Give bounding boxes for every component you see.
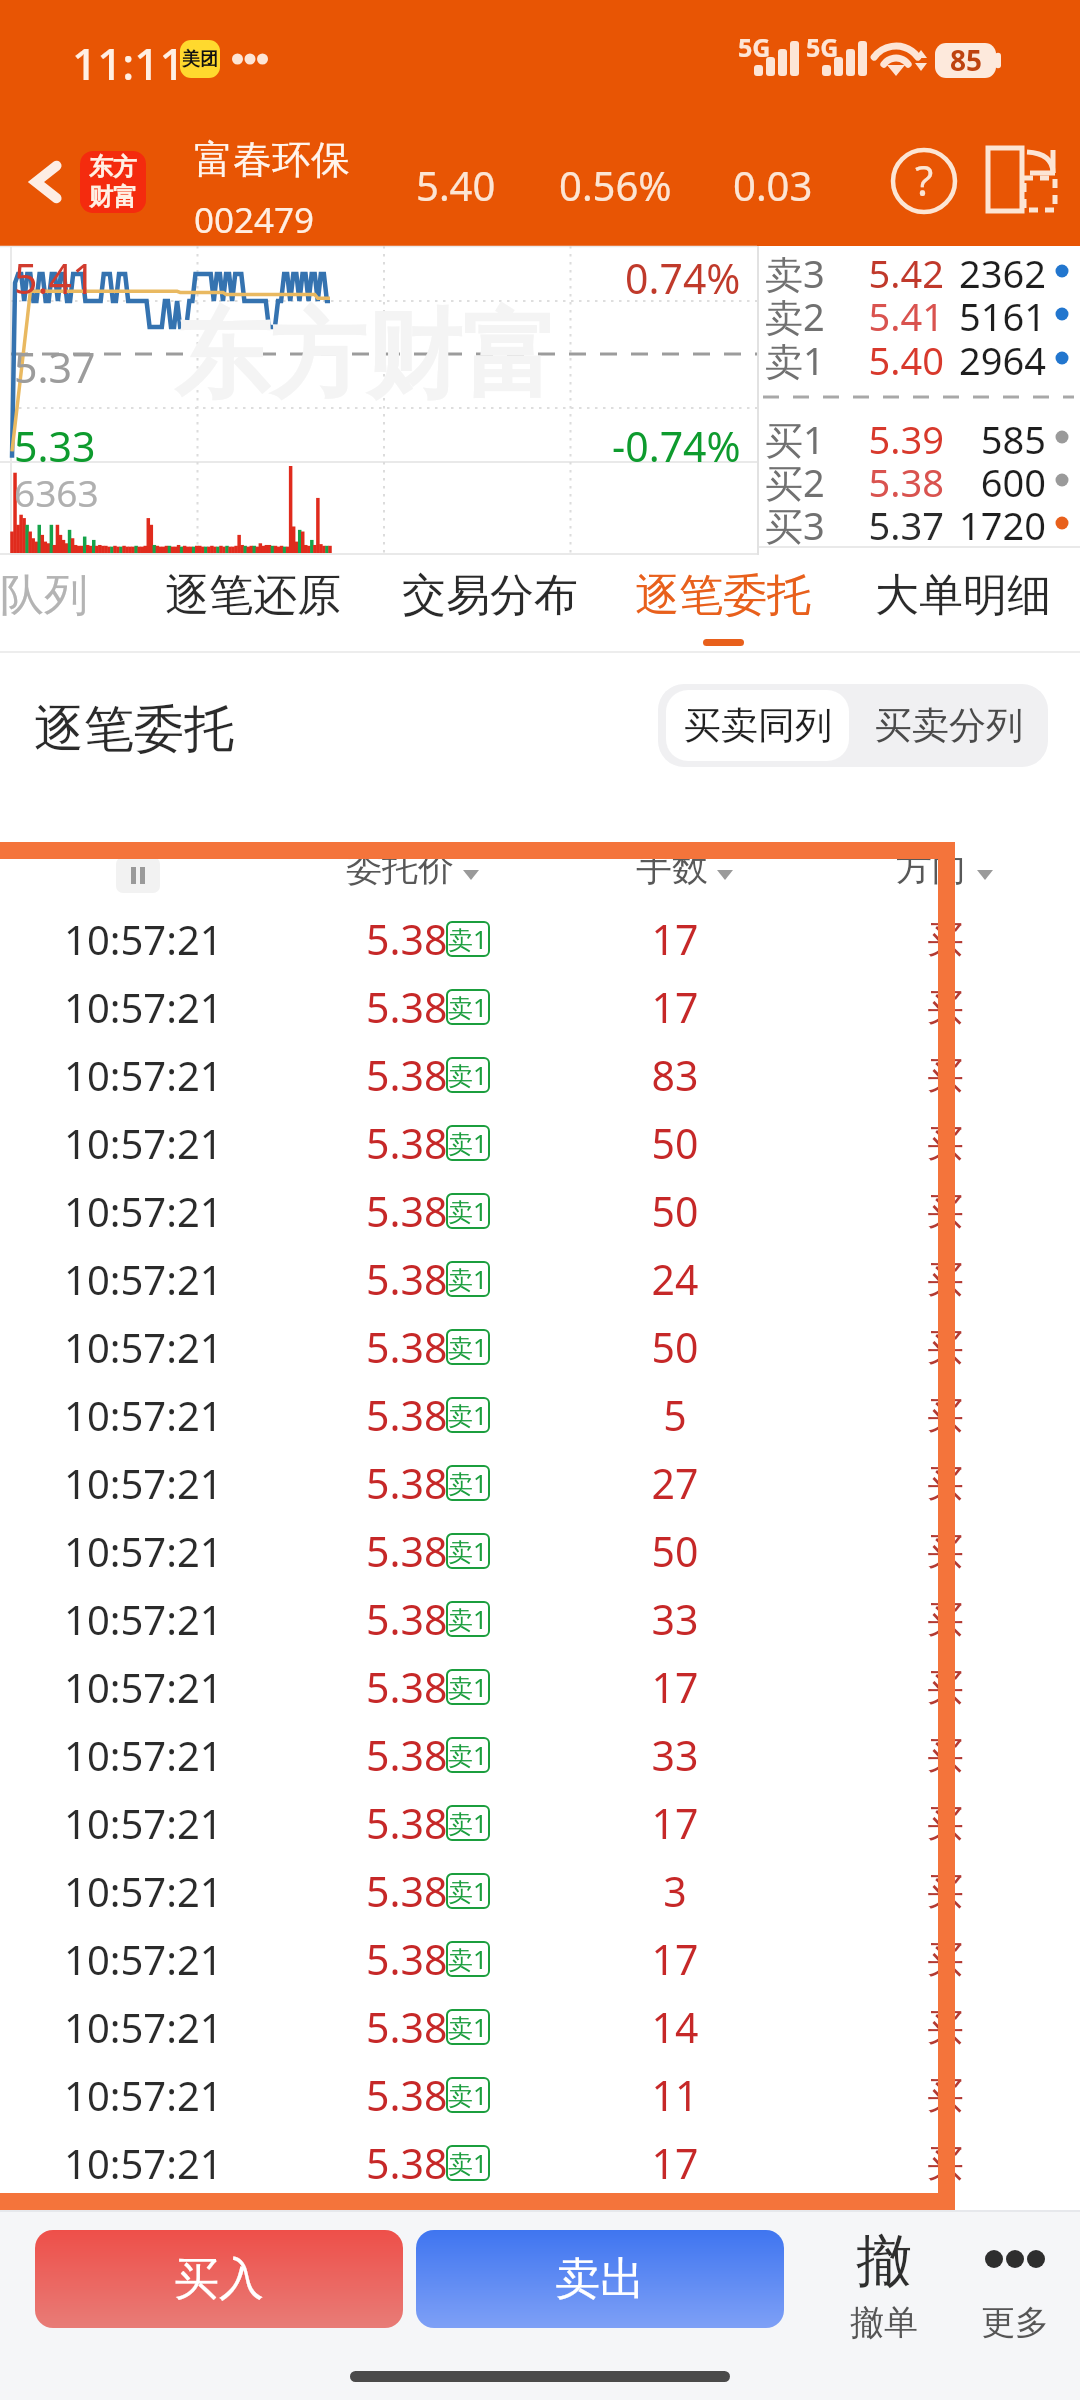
staticText: 卖2 <box>765 290 825 338</box>
staticText: 10:57:21 <box>64 1388 223 1442</box>
staticText: 50 <box>615 1319 735 1375</box>
button[interactable]: 10:57:21 <box>0 1925 1080 1993</box>
button[interactable]: 委托价 <box>346 845 479 890</box>
staticText: 撤 <box>856 2226 912 2297</box>
staticText: 卖1 <box>448 1330 488 1364</box>
button[interactable]: More <box>945 2218 1080 2348</box>
staticText: 逐笔还原 <box>165 568 341 623</box>
button[interactable]: 10:57:21 <box>0 1109 1080 1177</box>
staticText: 买 <box>927 1800 964 1847</box>
staticText: 财富 <box>89 182 137 212</box>
staticText: 5161 <box>949 290 1046 338</box>
staticText: 83 <box>615 1047 735 1103</box>
staticText: 002479 <box>194 196 315 244</box>
button[interactable]: 买2 <box>759 456 1080 504</box>
staticText: 5.38 <box>366 1523 448 1579</box>
staticText: -0.74% <box>612 418 741 474</box>
staticText: 17 <box>615 2135 735 2191</box>
staticText: 5.40 <box>817 334 944 382</box>
button[interactable]: 买入 <box>35 2230 403 2328</box>
button[interactable]: 方向 <box>896 845 993 890</box>
staticText: 更多 <box>981 2301 1049 2344</box>
button[interactable]: 10:57:21 <box>0 2061 1080 2129</box>
staticText: 卖1 <box>448 1126 488 1160</box>
button[interactable]: 卖2 <box>759 290 1080 338</box>
staticText: 10:57:21 <box>64 1048 223 1102</box>
staticText: 卖1 <box>448 1874 488 1908</box>
button[interactable]: 买3 <box>759 499 1080 547</box>
button[interactable]: 买卖同列 <box>666 690 849 761</box>
staticText: 2964 <box>949 334 1046 382</box>
button[interactable]: 撤 <box>814 2218 954 2348</box>
staticText: 17 <box>615 1931 735 1987</box>
staticText: 买 <box>927 1256 964 1303</box>
staticText: 5.33 <box>14 418 96 474</box>
staticText: 5.38 <box>366 1659 448 1715</box>
staticText: 0.74% <box>625 250 741 306</box>
button[interactable]: Landscape mode <box>986 140 1058 210</box>
staticText: 卖1 <box>448 2078 488 2112</box>
staticText: 5.38 <box>366 2135 448 2191</box>
button[interactable]: 10:57:21 <box>0 1993 1080 2061</box>
button[interactable]: 逐笔还原 <box>135 555 371 653</box>
staticText: 10:57:21 <box>64 1796 223 1850</box>
button[interactable]: 10:57:21 <box>0 1653 1080 1721</box>
button[interactable]: 10:57:21 <box>0 905 1080 973</box>
button[interactable]: 10:57:21 <box>0 1313 1080 1381</box>
staticText: 卖1 <box>448 922 488 956</box>
button[interactable]: Pause <box>116 857 160 893</box>
staticText: 买 <box>927 1936 964 1983</box>
staticText: 17 <box>615 911 735 967</box>
staticText: 5.38 <box>366 1183 448 1239</box>
button[interactable]: 委托队列 <box>0 555 110 653</box>
button[interactable]: 10:57:21 <box>0 1789 1080 1857</box>
button[interactable]: 逐笔委托 <box>605 555 841 653</box>
button[interactable]: 10:57:21 <box>0 1177 1080 1245</box>
staticText: 17 <box>615 1795 735 1851</box>
staticText: 6363 <box>14 467 99 517</box>
staticText: 5.38 <box>817 456 944 504</box>
button[interactable]: Help <box>884 141 964 221</box>
staticText: 2362 <box>949 247 1046 295</box>
button[interactable]: 10:57:21 <box>0 1585 1080 1653</box>
button[interactable]: 卖出 <box>416 2230 784 2328</box>
button[interactable]: 买1 <box>759 413 1080 461</box>
button[interactable]: 10:57:21 <box>0 1857 1080 1925</box>
button[interactable]: 10:57:21 <box>0 1517 1080 1585</box>
staticText: 50 <box>615 1115 735 1171</box>
button[interactable]: 买卖分列 <box>849 684 1048 767</box>
staticText: 10:57:21 <box>64 1660 223 1714</box>
button[interactable]: 手数 <box>636 845 733 890</box>
staticText: 买 <box>927 916 964 963</box>
staticText: 5.39 <box>817 413 944 461</box>
button[interactable]: 大单明细 <box>845 555 1080 653</box>
button[interactable]: 10:57:21 <box>0 2129 1080 2197</box>
staticText: 大单明细 <box>875 568 1051 623</box>
button[interactable]: 10:57:21 <box>0 1381 1080 1449</box>
staticText: 5.38 <box>366 1931 448 1987</box>
button[interactable]: 10:57:21 <box>0 1041 1080 1109</box>
button[interactable]: 10:57:21 <box>0 1449 1080 1517</box>
staticText: 买卖同列 <box>684 702 832 749</box>
button[interactable]: 卖3 <box>759 247 1080 295</box>
staticText: 10:57:21 <box>64 1116 223 1170</box>
staticText: 5.38 <box>366 1387 448 1443</box>
staticText: 买 <box>927 1868 964 1915</box>
staticText: 方向 <box>896 845 968 890</box>
staticText: 27 <box>615 1455 735 1511</box>
staticText: 委托队列 <box>0 568 88 623</box>
staticText: 买 <box>927 2072 964 2119</box>
staticText: 买1 <box>765 413 825 461</box>
button[interactable]: 10:57:21 <box>0 1245 1080 1313</box>
button[interactable]: Back <box>6 118 86 246</box>
staticText: 撤单 <box>850 2301 918 2344</box>
button[interactable]: 卖1 <box>759 334 1080 382</box>
staticText: 卖1 <box>448 1942 488 1976</box>
button[interactable]: 交易分布 <box>372 555 608 653</box>
staticText: 买 <box>927 984 964 1031</box>
button[interactable]: 10:57:21 <box>0 1721 1080 1789</box>
staticText: 10:57:21 <box>64 912 223 966</box>
staticText: 卖1 <box>448 1670 488 1704</box>
button[interactable]: 10:57:21 <box>0 973 1080 1041</box>
staticText: 卖1 <box>448 1194 488 1228</box>
